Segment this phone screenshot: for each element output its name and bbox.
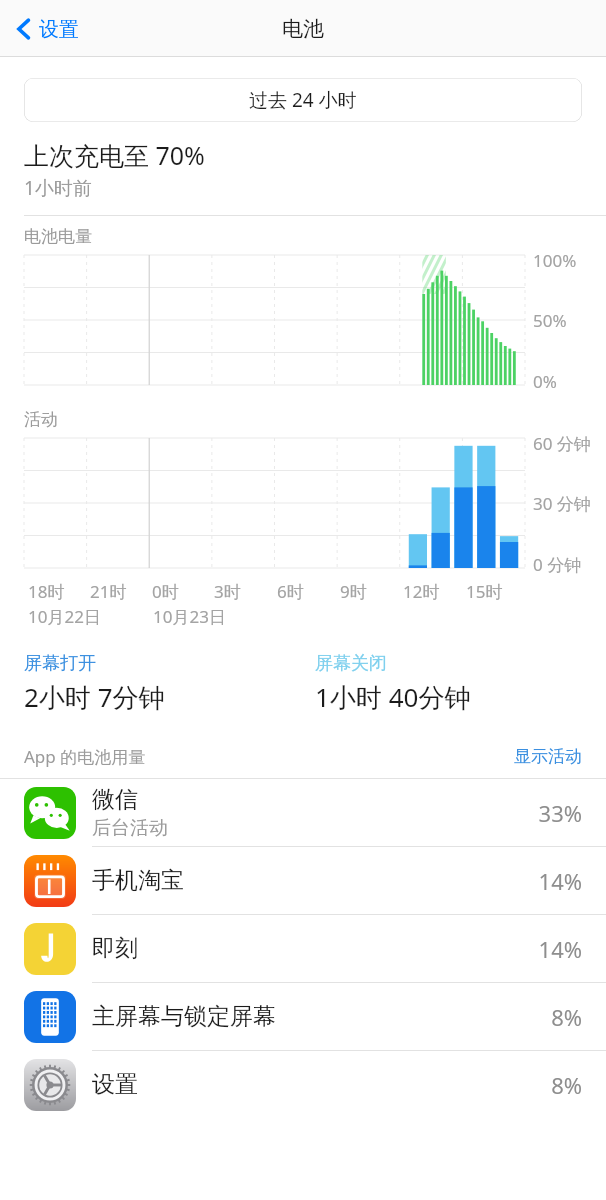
staticText: 14%	[538, 866, 582, 896]
staticText: 活动	[24, 409, 58, 430]
staticText: 50%	[533, 309, 567, 332]
staticText: 6时	[277, 580, 304, 603]
staticText: 屏幕打开	[24, 652, 96, 675]
staticText: 14%	[538, 934, 582, 964]
button[interactable]: 设置	[0, 1051, 606, 1118]
staticText: 1小时前	[24, 175, 92, 201]
staticText: 后台活动	[92, 816, 168, 840]
staticText: 屏幕关闭	[315, 652, 387, 675]
button[interactable]: 显示活动	[514, 746, 582, 767]
staticText: 12时	[403, 580, 440, 603]
button[interactable]: 微信	[0, 779, 606, 846]
staticText: 电池电量	[24, 226, 92, 247]
button[interactable]: 设置	[10, 10, 85, 48]
button[interactable]: 手机淘宝	[0, 847, 606, 914]
staticText: 设置	[92, 1070, 138, 1099]
staticText: 0%	[533, 370, 557, 393]
staticText: App 的电池用量	[24, 745, 146, 768]
staticText: 8%	[551, 1002, 582, 1032]
button[interactable]: 主屏幕与锁定屏幕	[0, 983, 606, 1050]
button[interactable]: 过去 24 小时	[24, 78, 582, 122]
staticText: 1小时 40分钟	[315, 679, 471, 715]
staticText: 过去 24 小时	[249, 87, 357, 113]
staticText: 微信	[92, 785, 138, 814]
staticText: 8%	[551, 1070, 582, 1100]
staticText: 即刻	[92, 934, 138, 963]
staticText: 设置	[39, 17, 79, 42]
staticText: 0 分钟	[533, 553, 582, 576]
staticText: 手机淘宝	[92, 866, 184, 895]
staticText: 上次充电至 70%	[24, 138, 205, 172]
button[interactable]: 即刻	[0, 915, 606, 982]
staticText: 15时	[466, 580, 503, 603]
staticText: 10月23日	[153, 605, 226, 628]
staticText: 3时	[214, 580, 241, 603]
staticText: 33%	[538, 798, 582, 828]
staticText: 21时	[90, 580, 127, 603]
staticText: 100%	[533, 249, 577, 272]
staticText: 60 分钟	[533, 432, 591, 455]
staticText: 2小时 7分钟	[24, 679, 165, 715]
staticText: 显示活动	[514, 746, 582, 767]
staticText: 9时	[340, 580, 367, 603]
staticText: 30 分钟	[533, 492, 591, 515]
staticText: 0时	[152, 580, 179, 603]
staticText: 10月22日	[28, 605, 101, 628]
staticText: 主屏幕与锁定屏幕	[92, 1002, 276, 1031]
staticText: 电池	[282, 16, 324, 42]
staticText: 18时	[28, 580, 65, 603]
